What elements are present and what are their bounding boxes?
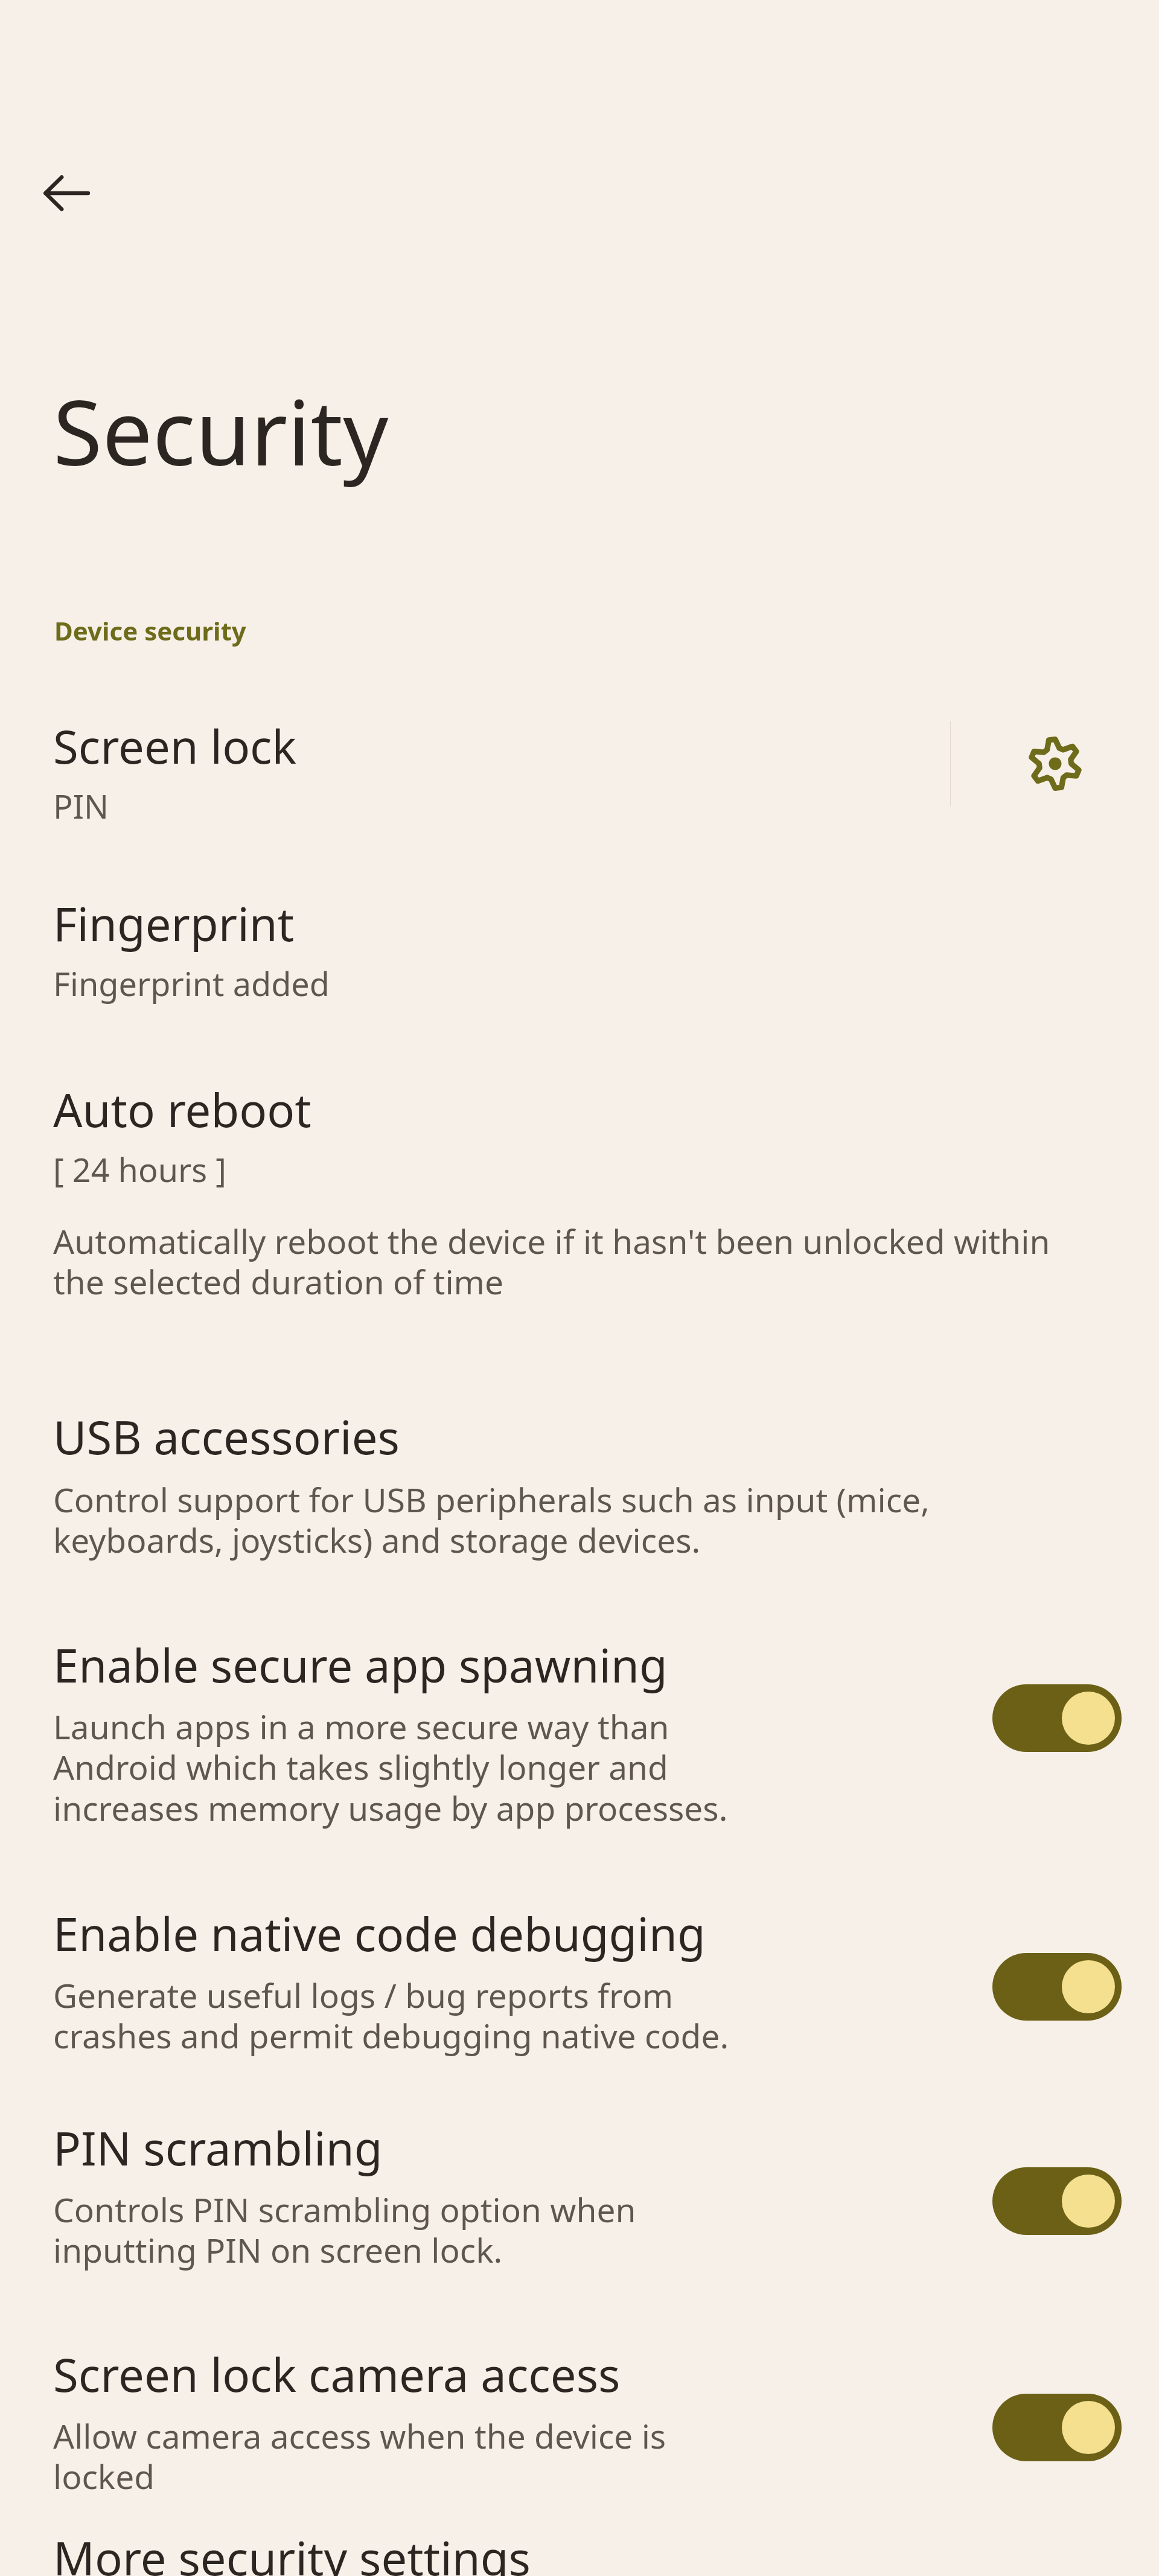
staticText: Auto reboot xyxy=(53,1078,311,1141)
staticText: Fingerprint xyxy=(53,892,295,955)
button[interactable]: Screen lock settings xyxy=(951,694,1159,833)
button[interactable]: Toggle on xyxy=(992,1953,1122,2021)
button[interactable]: Fingerprint xyxy=(0,881,1159,1017)
button[interactable]: Enable native code debugging xyxy=(0,1893,1159,2070)
staticText: Device security xyxy=(54,613,246,648)
button[interactable]: Auto reboot xyxy=(0,1067,1159,1315)
staticText: Enable native code debugging xyxy=(53,1902,706,1965)
staticText: USB accessories xyxy=(53,1405,400,1468)
staticText: Screen lock xyxy=(53,715,297,778)
staticText: Launch apps in a more secure way than An… xyxy=(53,1704,763,1830)
staticText: Allow camera access when the device is l… xyxy=(53,2413,763,2499)
button[interactable]: PIN scrambling xyxy=(0,2107,1159,2284)
staticText: Control support for USB peripherals such… xyxy=(53,1477,1081,1562)
staticText: Security xyxy=(53,370,389,492)
button[interactable]: Toggle on xyxy=(992,2167,1122,2235)
button[interactable]: Back xyxy=(29,156,104,231)
staticText: Generate useful logs / bug reports from … xyxy=(53,1972,775,2058)
staticText: PIN scrambling xyxy=(53,2117,383,2179)
button[interactable]: Toggle on xyxy=(992,2394,1122,2461)
button[interactable]: Enable secure app spawning xyxy=(0,1624,1159,1843)
staticText: PIN xyxy=(53,784,109,828)
staticText: Enable secure app spawning xyxy=(53,1634,668,1696)
staticText: [ 24 hours ] xyxy=(53,1147,227,1192)
button[interactable]: Toggle on xyxy=(992,1684,1122,1752)
button[interactable]: Screen lock xyxy=(0,694,950,833)
button[interactable]: USB accessories xyxy=(0,1395,1159,1573)
staticText: Fingerprint added xyxy=(53,961,330,1006)
staticText: Screen lock camera access xyxy=(53,2343,621,2406)
button[interactable]: More security settings xyxy=(53,2526,531,2576)
staticText: Controls PIN scrambling option when inpu… xyxy=(53,2187,751,2272)
button[interactable]: Screen lock camera access xyxy=(0,2333,1159,2511)
staticText: Automatically reboot the device if it ha… xyxy=(53,1218,1056,1304)
